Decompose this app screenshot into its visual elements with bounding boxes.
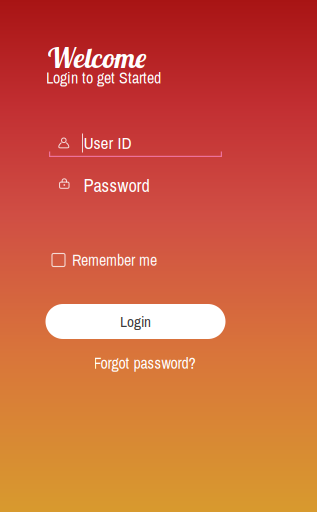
staticText: Forgot password? (93, 352, 195, 374)
button[interactable]: Forgot password? (54, 353, 234, 373)
button[interactable]: Login (45, 304, 225, 339)
staticText: Remember me (72, 249, 157, 271)
staticText: Password (83, 173, 149, 198)
button[interactable]: Remember me (52, 250, 232, 270)
staticText: Login to get Started (46, 67, 161, 89)
staticText: User ID (83, 131, 131, 154)
staticText: Login (120, 311, 151, 332)
staticText: Welcome (46, 40, 146, 75)
